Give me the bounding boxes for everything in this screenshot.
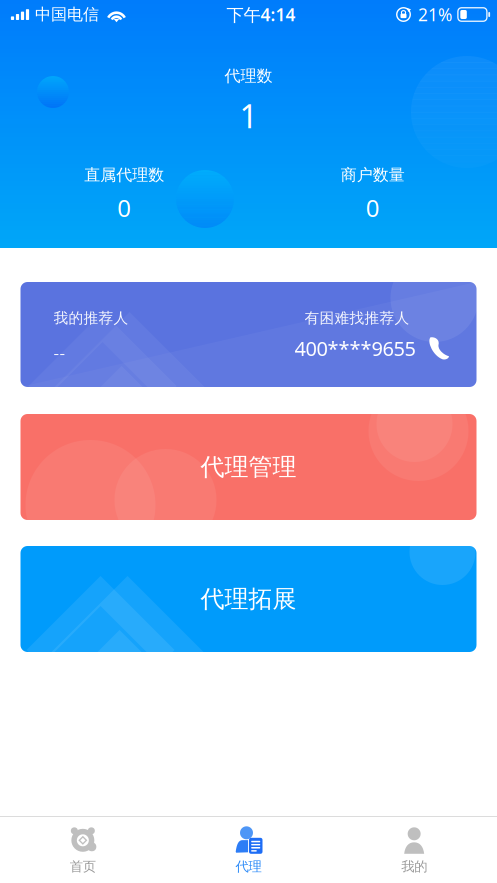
staticText: 有困难找推荐人 [304, 309, 409, 327]
button[interactable]: 代理管理 [20, 414, 476, 520]
staticText: 400****9655 [294, 335, 415, 362]
button[interactable]: 代理拓展 [20, 546, 476, 652]
staticText: 21% [418, 3, 452, 26]
staticText: 直属代理数 [84, 165, 164, 185]
button[interactable]: 我的 [331, 817, 497, 883]
button[interactable]: 代理 [166, 817, 331, 883]
staticText: 代理数 [224, 66, 272, 86]
staticText: 我的 [401, 858, 427, 875]
button[interactable]: 我的推荐人 [20, 282, 476, 387]
staticText: 中国电信 [35, 5, 99, 24]
staticText: 代理拓展 [200, 584, 296, 614]
staticText: 代理 [235, 858, 261, 875]
staticText: 我的推荐人 [53, 309, 128, 327]
staticText: 0 [117, 192, 131, 224]
staticText: 0 [366, 192, 380, 224]
staticText: 下午4:14 [226, 3, 295, 26]
staticText: 首页 [70, 858, 96, 875]
staticText: 1 [239, 95, 257, 137]
staticText: 商户数量 [341, 165, 405, 185]
staticText: -- [53, 341, 65, 364]
button[interactable]: 首页 [0, 817, 166, 883]
staticText: 代理管理 [200, 452, 296, 482]
